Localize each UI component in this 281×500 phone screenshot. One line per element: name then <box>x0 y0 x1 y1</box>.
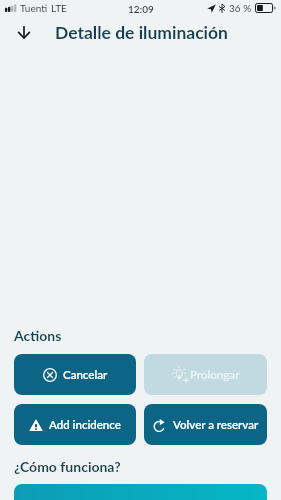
staticText: Actions <box>14 327 62 344</box>
staticText: Add incidence <box>49 418 121 432</box>
staticText: Tuenti <box>20 2 48 14</box>
button[interactable]: Prolongar <box>144 354 267 395</box>
staticText: Detalle de iluminación <box>55 22 228 43</box>
button[interactable]: Back <box>10 18 38 46</box>
staticText: Prolongar <box>190 368 240 382</box>
staticText: LTE <box>51 2 67 14</box>
staticText: Volver a reservar <box>173 418 259 432</box>
staticText: 36 % <box>229 2 252 14</box>
staticText: Cancelar <box>63 368 108 382</box>
button[interactable]: Volver a reservar <box>144 404 267 445</box>
button[interactable]: Add incidence <box>14 404 136 445</box>
button[interactable]: Cancelar <box>14 354 136 395</box>
staticText: 12:09 <box>128 3 154 15</box>
button[interactable] <box>14 484 267 500</box>
staticText: ¿Cómo funciona? <box>14 458 121 475</box>
